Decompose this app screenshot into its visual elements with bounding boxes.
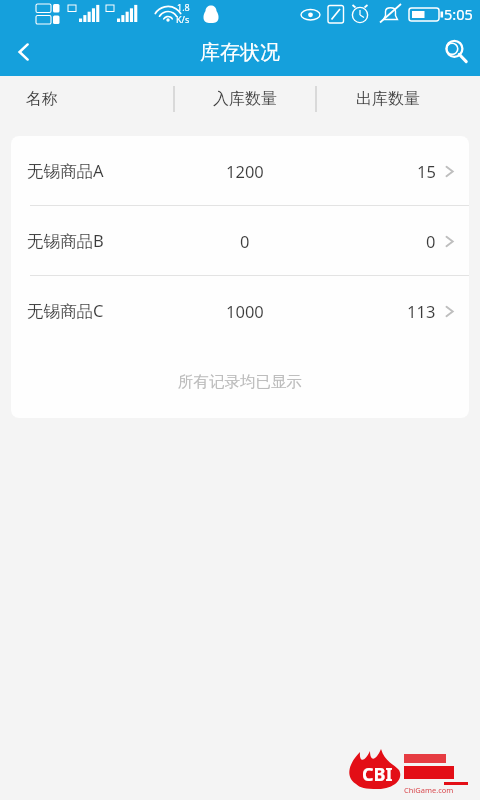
staticText: 0 <box>240 230 250 252</box>
staticText: K/s <box>176 13 190 25</box>
staticText: 15 <box>417 160 436 182</box>
staticText: 5:05 <box>444 4 473 24</box>
staticText: 无锡商品A <box>27 159 104 182</box>
staticText: 无锡商品B <box>27 229 104 252</box>
staticText: 无锡商品C <box>27 299 104 322</box>
staticText: 入库数量 <box>213 89 277 109</box>
staticText: ChiGame.com <box>404 785 454 795</box>
staticText: 0 <box>426 230 436 252</box>
button[interactable]: 无锡商品C <box>11 276 469 345</box>
staticText: 库存状况 <box>200 40 280 65</box>
staticText: 1000 <box>226 300 264 322</box>
staticText: 1200 <box>226 160 264 182</box>
staticText: 113 <box>407 300 436 322</box>
button[interactable]: 无锡商品A <box>11 136 469 205</box>
staticText: 名称 <box>26 89 58 109</box>
button[interactable]: Search <box>432 28 480 76</box>
staticText: 出库数量 <box>356 89 420 109</box>
staticText: 所有记录均已显示 <box>178 372 302 392</box>
staticText: CBI <box>362 762 393 787</box>
button[interactable]: Back <box>0 28 48 76</box>
button[interactable]: 无锡商品B <box>11 206 469 275</box>
staticText: 1.8 <box>177 1 190 13</box>
